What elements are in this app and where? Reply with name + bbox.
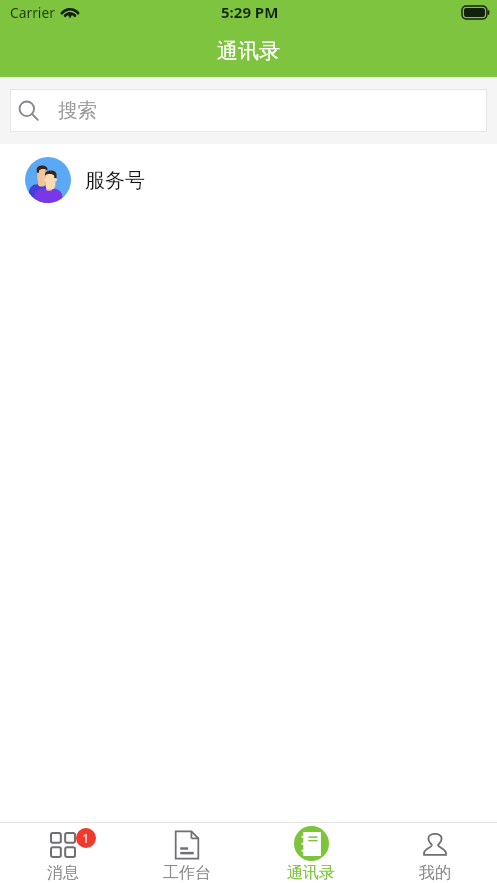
staticText: 1 [82,829,90,847]
staticText: 5:29 PM [221,2,279,22]
button[interactable]: Profile [373,822,497,883]
button[interactable]: Contacts [249,822,373,883]
staticText: 消息 [47,863,79,883]
button[interactable]: 服务号 [0,144,497,216]
staticText: 搜索 [58,98,97,123]
button[interactable]: Messages [0,822,125,883]
staticText: 我的 [419,863,451,883]
button[interactable]: Workbench [125,822,249,883]
staticText: 通讯录 [217,38,280,64]
button[interactable]: 搜索 [10,89,487,132]
staticText: Carrier [10,3,55,22]
staticText: 工作台 [163,863,211,883]
staticText: 通讯录 [287,863,335,883]
staticText: 服务号 [85,168,145,193]
